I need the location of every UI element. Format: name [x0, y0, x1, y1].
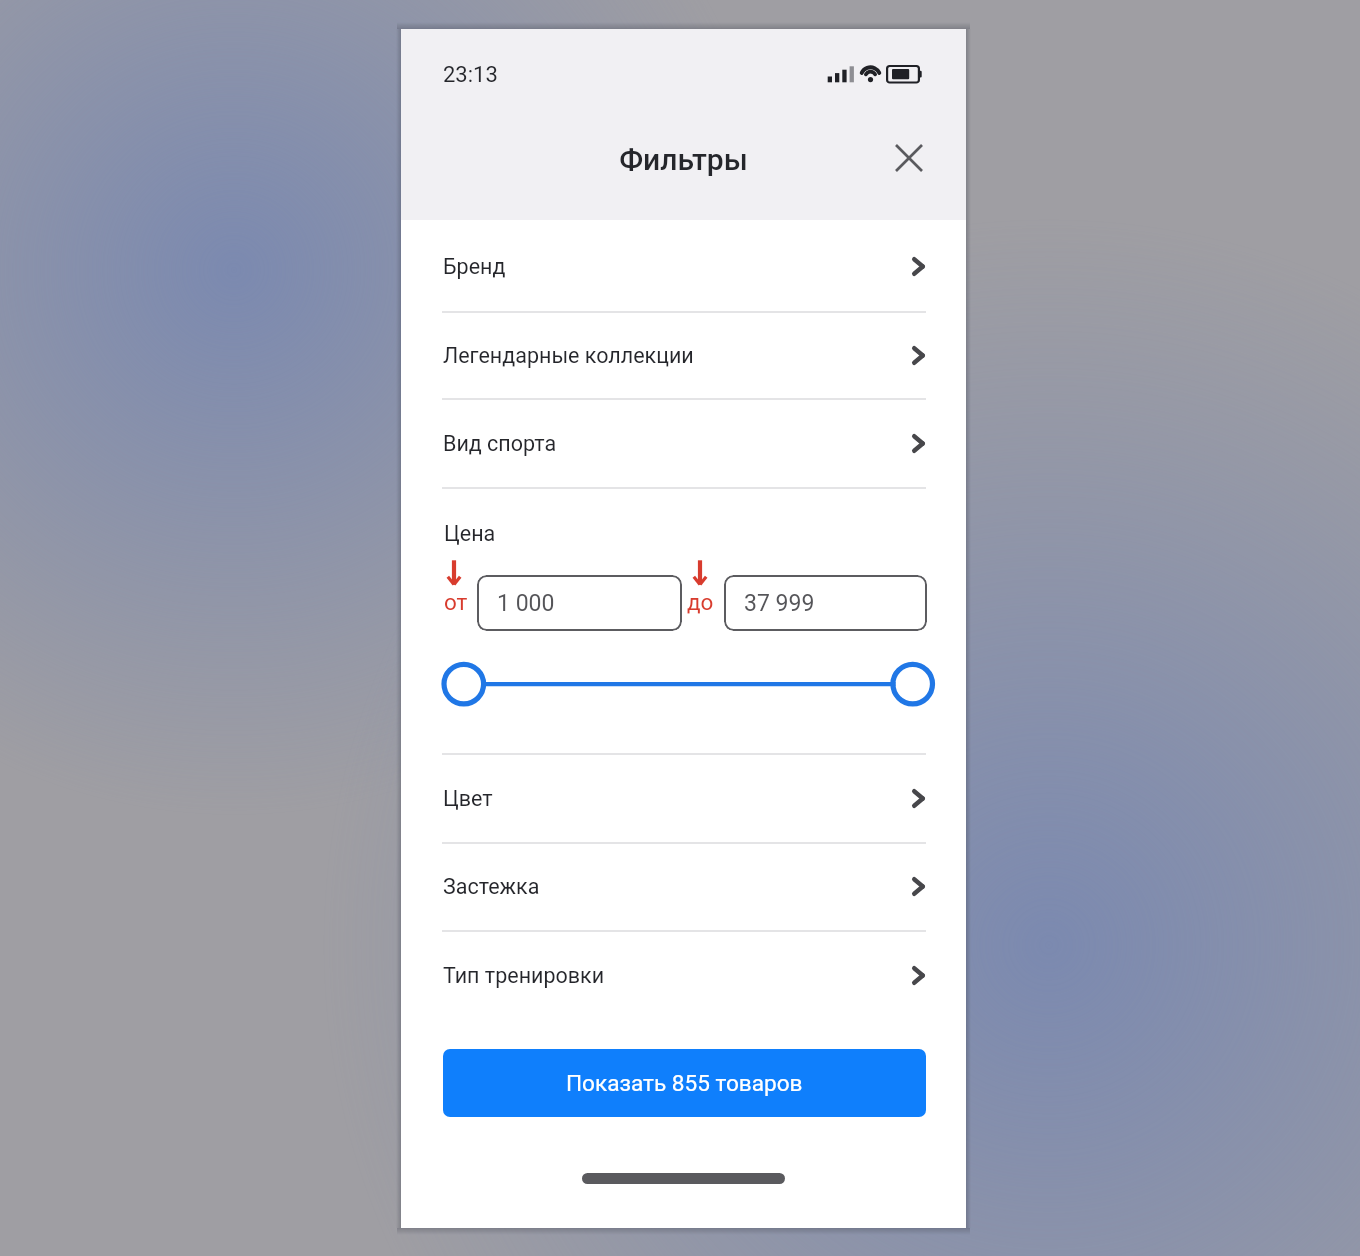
button[interactable]: Легендарные коллекции — [401, 312, 966, 399]
staticText: Показать 855 товаров — [566, 1070, 803, 1096]
staticText: Застежка — [443, 874, 540, 899]
staticText: 1 000 — [497, 590, 555, 617]
staticText: 37 999 — [744, 590, 815, 617]
staticText: Фильтры — [619, 142, 748, 177]
button[interactable]: Закрыть — [879, 128, 939, 188]
button[interactable]: Диапазон цены — [442, 654, 934, 714]
button[interactable]: 37 999 — [724, 575, 927, 631]
staticText: Легендарные коллекции — [443, 343, 694, 368]
staticText: Тип тренировки — [443, 963, 605, 988]
staticText: 23:13 — [443, 62, 498, 88]
staticText: Вид спорта — [443, 431, 557, 456]
button[interactable]: Бренд — [401, 220, 966, 312]
staticText: до — [687, 589, 714, 615]
staticText: Цвет — [443, 786, 493, 811]
button[interactable]: Тип тренировки — [401, 931, 966, 1019]
button[interactable]: Вид спорта — [401, 399, 966, 488]
staticText: от — [444, 589, 468, 615]
button[interactable]: Показать 855 товаров — [443, 1049, 926, 1117]
button[interactable]: 1 000 — [477, 575, 682, 631]
button[interactable]: Застежка — [401, 843, 966, 930]
staticText: Цена — [444, 521, 496, 546]
staticText: Бренд — [443, 254, 506, 279]
button[interactable]: Цвет — [401, 754, 966, 843]
